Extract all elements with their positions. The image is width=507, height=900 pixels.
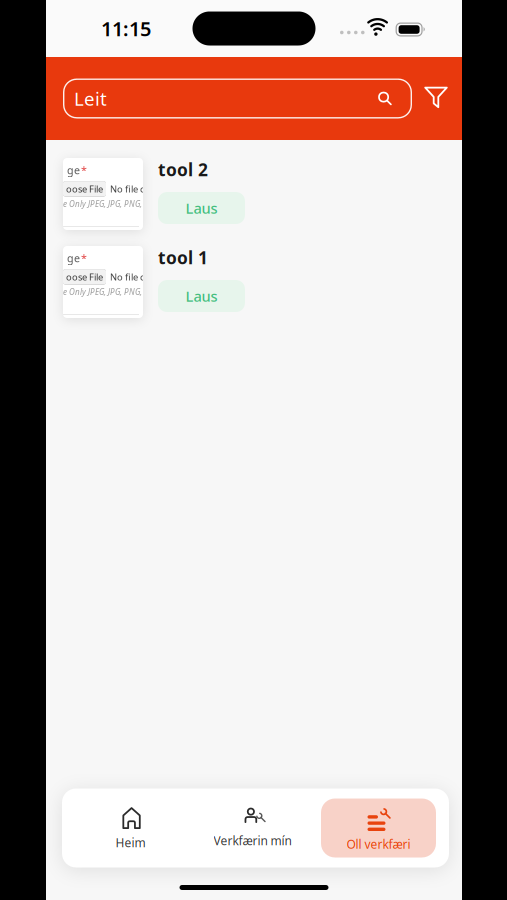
- button[interactable]: ge: [63, 246, 445, 318]
- staticText: oose File: [66, 271, 103, 283]
- staticText: 11:15: [101, 15, 151, 42]
- staticText: oose File: [66, 183, 103, 195]
- staticText: *: [81, 163, 87, 177]
- staticText: tool 1: [158, 246, 208, 269]
- button[interactable]: Öll verkfæri: [321, 798, 436, 857]
- staticText: Leit: [74, 86, 107, 111]
- button[interactable]: Verkfærin mín: [199, 788, 306, 867]
- staticText: ge: [67, 251, 80, 265]
- staticText: *: [81, 251, 87, 265]
- button[interactable]: ge: [63, 158, 445, 230]
- button[interactable]: Heim: [62, 788, 199, 867]
- button[interactable]: Leit: [63, 78, 412, 118]
- staticText: e Only JPEG, JPG, PNG, GI: [63, 199, 152, 209]
- staticText: ge: [67, 163, 80, 177]
- staticText: Öll verkfæri: [346, 836, 410, 852]
- staticText: Laus: [185, 198, 217, 218]
- staticText: No file ch: [110, 271, 150, 283]
- staticText: e Only JPEG, JPG, PNG, GI: [63, 287, 152, 297]
- staticText: Laus: [185, 286, 217, 306]
- staticText: Verkfærin mín: [213, 832, 291, 848]
- staticText: Heim: [115, 834, 145, 850]
- staticText: tool 2: [158, 158, 208, 181]
- staticText: No file ch: [110, 183, 150, 195]
- button[interactable]: Filter: [424, 86, 448, 111]
